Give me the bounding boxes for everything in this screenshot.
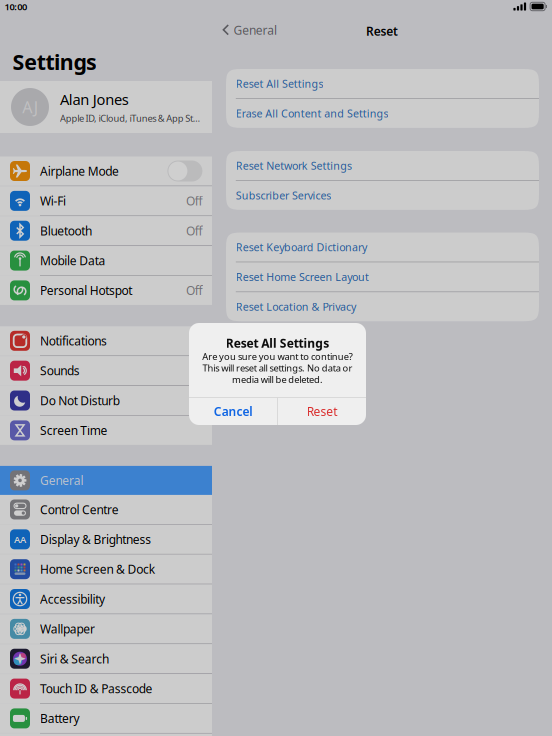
staticText: Bluetooth <box>40 223 92 239</box>
button[interactable]: Battery <box>0 704 212 733</box>
staticText: Siri & Search <box>40 651 109 667</box>
staticText: Notifications <box>40 333 107 349</box>
staticText: Apple ID, iCloud, iTunes & App St… <box>60 112 200 124</box>
button[interactable]: AA <box>0 525 212 554</box>
staticText: Sounds <box>40 363 80 379</box>
button[interactable]: Sounds <box>0 356 212 385</box>
staticText: Reset Keyboard Dictionary <box>236 240 367 254</box>
button[interactable]: Accessibility <box>0 584 212 614</box>
staticText: AJ <box>22 96 38 118</box>
staticText: Off <box>186 193 202 209</box>
staticText: 10:00 <box>4 0 27 13</box>
staticText: Touch ID & Passcode <box>40 681 152 696</box>
button[interactable]: Screen Time <box>0 416 212 445</box>
button[interactable]: Do Not Disturb <box>0 386 212 415</box>
staticText: Display & Brightness <box>40 531 151 547</box>
button[interactable]: Home Screen & Dock <box>0 555 212 584</box>
button[interactable]: General <box>221 19 291 41</box>
staticText: Control Centre <box>40 501 119 517</box>
button[interactable]: Personal Hotspot <box>0 276 212 305</box>
staticText: Home Screen & Dock <box>40 561 155 577</box>
staticText: Reset All Settings <box>236 76 323 91</box>
staticText: Off <box>186 223 202 239</box>
button[interactable]: Reset All Settings <box>226 69 539 98</box>
staticText: Off <box>186 282 202 298</box>
staticText: Do Not Disturb <box>40 393 120 408</box>
button[interactable]: Erase All Content and Settings <box>226 99 539 128</box>
staticText: Mobile Data <box>40 253 105 268</box>
button[interactable]: Cancel <box>189 398 277 425</box>
staticText: Subscriber Services <box>236 188 331 202</box>
button[interactable]: Subscriber Services <box>226 181 539 210</box>
staticText: Wallpaper <box>40 621 95 637</box>
button[interactable]: Reset Home Screen Layout <box>226 262 539 291</box>
button[interactable]: AJ <box>0 81 212 133</box>
staticText: Screen Time <box>40 422 107 438</box>
staticText: Airplane Mode <box>40 163 119 179</box>
staticText: Erase All Content and Settings <box>236 106 388 120</box>
button[interactable]: Reset Location & Privacy <box>226 292 539 321</box>
staticText: Reset <box>366 23 398 39</box>
button[interactable]: Notifications <box>0 326 212 355</box>
staticText: Are you sure you want to continue? <box>202 350 353 363</box>
staticText: This will reset all settings. No data or <box>202 362 353 374</box>
staticText: Cancel <box>214 403 252 419</box>
button[interactable]: Wallpaper <box>0 614 212 643</box>
button[interactable]: Siri & Search <box>0 644 212 673</box>
staticText: media will be deleted. <box>232 373 323 386</box>
staticText: Settings <box>12 47 97 76</box>
staticText: Alan Jones <box>60 90 129 109</box>
staticText: General <box>233 22 277 38</box>
staticText: Battery <box>40 710 79 726</box>
staticText: Accessibility <box>40 591 105 607</box>
button[interactable]: Bluetooth <box>0 216 212 245</box>
button[interactable]: Reset Network Settings <box>226 151 539 180</box>
staticText: Reset Location & Privacy <box>236 300 356 314</box>
staticText: Reset All Settings <box>226 335 329 351</box>
staticText: Reset Network Settings <box>236 158 352 173</box>
button[interactable]: Reset <box>278 398 366 425</box>
staticText: Personal Hotspot <box>40 282 132 298</box>
button[interactable]: General <box>0 466 212 495</box>
button[interactable]: Airplane Mode <box>0 156 212 186</box>
staticText: AA <box>14 533 26 545</box>
button[interactable]: Reset Keyboard Dictionary <box>226 232 539 262</box>
button[interactable]: Touch ID & Passcode <box>0 674 212 703</box>
button[interactable]: Control Centre <box>0 495 212 524</box>
button[interactable]: Mobile Data <box>0 246 212 275</box>
button[interactable]: Wi-Fi <box>0 186 212 215</box>
staticText: Reset Home Screen Layout <box>236 270 369 284</box>
staticText: General <box>40 472 83 488</box>
staticText: Reset <box>307 403 337 419</box>
staticText: Wi-Fi <box>40 193 66 209</box>
